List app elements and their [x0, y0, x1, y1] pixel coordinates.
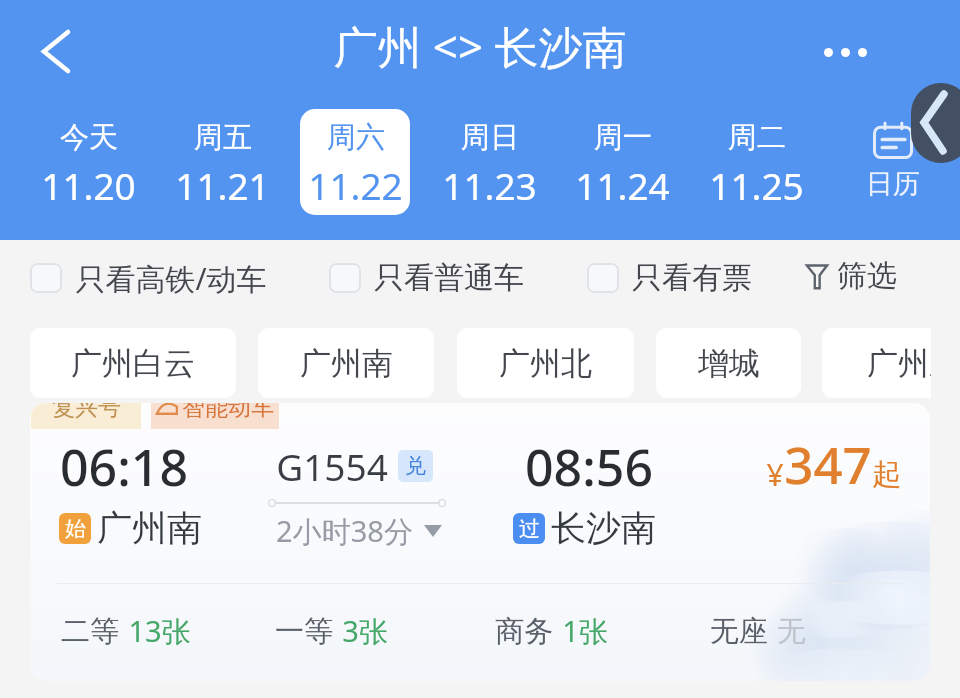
staticText: 只看有票: [632, 259, 752, 297]
staticText: 08:56: [525, 433, 653, 501]
button[interactable]: 日历: [845, 110, 941, 210]
staticText: 周二: [728, 119, 786, 156]
button[interactable]: 只看有票: [587, 256, 752, 300]
staticText: 11.23: [442, 160, 537, 210]
staticText: 无座: [710, 613, 768, 650]
staticText: 复兴号: [52, 403, 121, 422]
staticText: 广州南: [300, 344, 393, 383]
staticText: 智能动车: [182, 403, 274, 422]
staticText: 只看高铁/动车: [75, 258, 267, 299]
staticText: 增城: [698, 344, 760, 383]
staticText: 周五: [194, 119, 252, 156]
staticText: 今天: [60, 119, 118, 156]
button[interactable]: 周二: [701, 109, 811, 215]
staticText: 周一: [594, 119, 652, 156]
button[interactable]: 复兴号: [30, 403, 930, 681]
staticText: 兑: [405, 453, 426, 479]
staticText: 始: [65, 516, 86, 542]
staticText: 起: [872, 456, 901, 493]
staticText: 只看普通车: [374, 259, 524, 297]
button[interactable]: 广州东: [822, 328, 931, 398]
button[interactable]: 广州白云: [30, 328, 236, 398]
staticText: 一等: [275, 613, 333, 650]
button[interactable]: 2小时38分: [276, 511, 442, 551]
staticText: 11.20: [41, 160, 136, 210]
staticText: 过: [519, 516, 540, 542]
staticText: 13张: [128, 611, 191, 651]
staticText: 1张: [562, 611, 608, 651]
staticText: 广州南: [97, 506, 202, 550]
staticText: 11.22: [308, 160, 403, 210]
staticText: 11.24: [575, 160, 670, 210]
staticText: 06:18: [60, 433, 188, 501]
staticText: 广州 <> 长沙南: [333, 16, 627, 76]
staticText: ¥: [766, 454, 784, 495]
staticText: 3张: [342, 611, 388, 651]
button[interactable]: Back: [911, 83, 960, 163]
button[interactable]: 筛选: [806, 256, 897, 296]
staticText: 11.21: [175, 160, 270, 210]
staticText: 商务: [495, 613, 553, 650]
button[interactable]: More options: [795, 28, 895, 76]
staticText: 11.25: [709, 160, 804, 210]
staticText: 日历: [866, 167, 920, 201]
staticText: 长沙南: [551, 506, 656, 550]
staticText: 347: [784, 429, 872, 498]
staticText: G1554: [276, 441, 388, 491]
staticText: 二等: [61, 613, 119, 650]
button[interactable]: 周五: [167, 109, 277, 215]
button[interactable]: Back: [23, 18, 89, 84]
button[interactable]: 广州北: [457, 328, 634, 398]
staticText: 筛选: [837, 257, 897, 295]
staticText: 周六: [327, 119, 385, 156]
staticText: 广州北: [499, 344, 592, 383]
button[interactable]: 周一: [567, 109, 677, 215]
staticText: 2小时38分: [276, 511, 413, 551]
button[interactable]: 只看普通车: [329, 256, 524, 300]
staticText: 无: [777, 613, 806, 650]
button[interactable]: 今天: [33, 109, 143, 215]
staticText: 周日: [461, 119, 519, 156]
button[interactable]: 周六: [300, 109, 410, 215]
button[interactable]: 增城: [656, 328, 801, 398]
button[interactable]: 周日: [434, 109, 544, 215]
button[interactable]: 广州南: [258, 328, 434, 398]
staticText: 广州东: [867, 344, 931, 383]
button[interactable]: 只看高铁/动车: [30, 256, 267, 300]
staticText: 广州白云: [71, 344, 195, 383]
